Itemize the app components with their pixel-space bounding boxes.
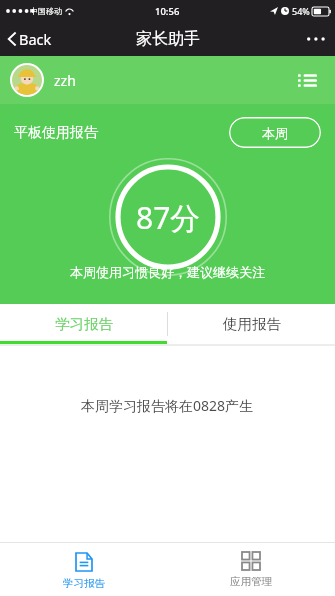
staticText: 10:56 — [155, 5, 180, 18]
staticText: zzh — [54, 71, 76, 90]
staticText: 54% — [292, 5, 310, 17]
button[interactable]: 本周 — [229, 117, 321, 148]
button[interactable]: 使用报告 — [168, 304, 335, 344]
staticText: 本周学习报告将在0828产生 — [81, 396, 254, 415]
staticText: 平板使用报告 — [14, 124, 98, 142]
staticText: 学习报告 — [63, 577, 105, 590]
button[interactable]: 应用管理 — [167, 543, 335, 596]
staticText: 学习报告 — [55, 315, 113, 333]
button[interactable]: 学习报告 — [0, 543, 167, 596]
staticText: 家长助手 — [136, 29, 200, 49]
button[interactable]: 学习报告 — [0, 304, 167, 344]
staticText: 本周使用习惯良好，建议继续关注 — [70, 264, 265, 280]
staticText: Back — [19, 29, 52, 49]
button[interactable]: More options — [297, 27, 335, 51]
staticText: 本周 — [262, 125, 288, 141]
staticText: 中国移动 — [30, 6, 62, 16]
button[interactable]: Back — [0, 23, 64, 55]
staticText: 87分 — [136, 197, 201, 238]
button[interactable]: Menu — [290, 65, 325, 96]
staticText: 使用报告 — [223, 315, 281, 333]
staticText: 应用管理 — [230, 575, 272, 588]
